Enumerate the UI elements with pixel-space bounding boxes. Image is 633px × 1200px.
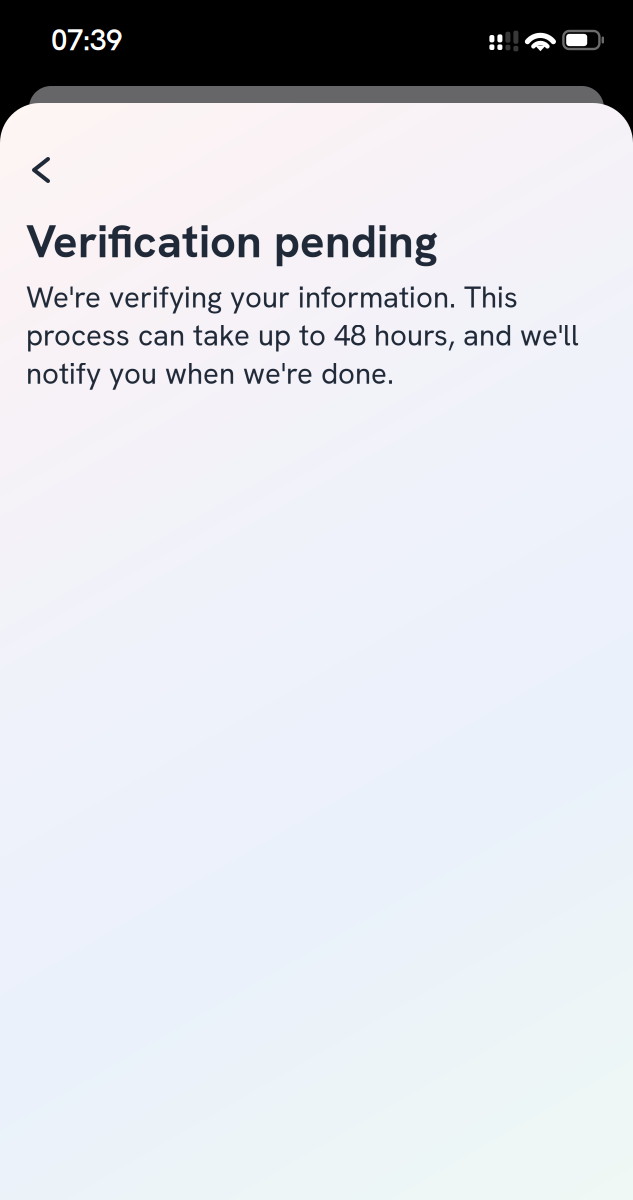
staticText: 07:39: [51, 21, 122, 59]
button[interactable]: Back: [0, 103, 72, 200]
staticText: We're verifying your information. This p…: [26, 278, 579, 393]
staticText: Verification pending: [26, 212, 438, 271]
